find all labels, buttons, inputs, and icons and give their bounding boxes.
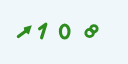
button[interactable]: 108 steps, trending up <box>0 0 128 64</box>
